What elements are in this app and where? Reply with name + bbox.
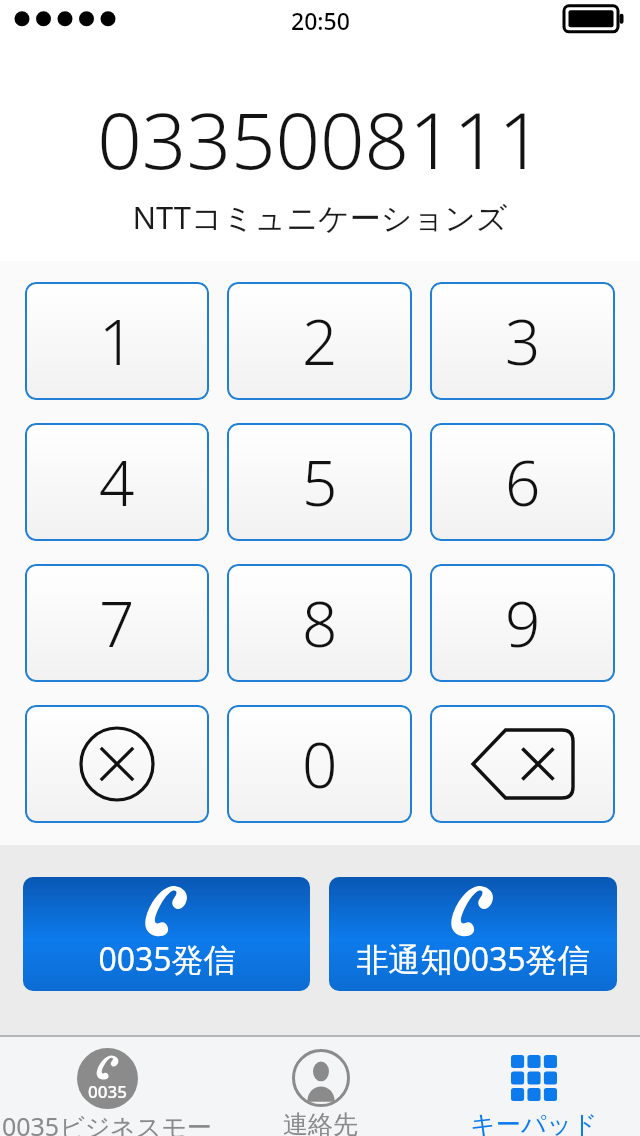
staticText: 4 — [99, 440, 135, 524]
staticText: 2 — [302, 299, 338, 383]
button[interactable]: Clear number — [25, 705, 209, 823]
staticText: 6 — [505, 440, 541, 524]
staticText: 非通知0035発信 — [356, 937, 590, 981]
staticText: 0035ビジネスモード — [0, 1109, 214, 1136]
staticText: 0035発信 — [98, 937, 236, 981]
button[interactable]: キーパッド — [427, 1037, 640, 1136]
staticText: 1 — [99, 299, 135, 383]
button[interactable]: 非通知0035発信 — [329, 877, 617, 991]
staticText: 連絡先 — [283, 1109, 358, 1136]
button[interactable]: 1 — [25, 282, 209, 400]
button[interactable]: 9 — [430, 564, 615, 682]
button[interactable]: 0035発信 — [23, 877, 310, 991]
button[interactable]: 6 — [430, 423, 615, 541]
button[interactable]: Backspace — [430, 705, 615, 823]
button[interactable]: 7 — [25, 564, 209, 682]
staticText: キーパッド — [470, 1109, 598, 1136]
staticText: 5 — [302, 440, 338, 524]
button[interactable]: 2 — [227, 282, 412, 400]
button[interactable]: 3 — [430, 282, 615, 400]
staticText: 3 — [505, 299, 541, 383]
staticText: 20:50 — [291, 5, 350, 36]
staticText: 8 — [302, 581, 338, 665]
button[interactable]: 0 — [227, 705, 412, 823]
staticText: 0 — [302, 722, 338, 806]
staticText: 7 — [99, 581, 135, 665]
button[interactable]: 連絡先 — [214, 1037, 427, 1136]
staticText: 0035 — [88, 1080, 127, 1103]
staticText: NTTコミュニケーションズ — [132, 196, 508, 238]
staticText: 0335008111 — [97, 86, 543, 192]
button[interactable]: 0035 — [0, 1037, 214, 1136]
button[interactable]: 8 — [227, 564, 412, 682]
button[interactable]: 5 — [227, 423, 412, 541]
button[interactable]: 4 — [25, 423, 209, 541]
staticText: 9 — [505, 581, 541, 665]
